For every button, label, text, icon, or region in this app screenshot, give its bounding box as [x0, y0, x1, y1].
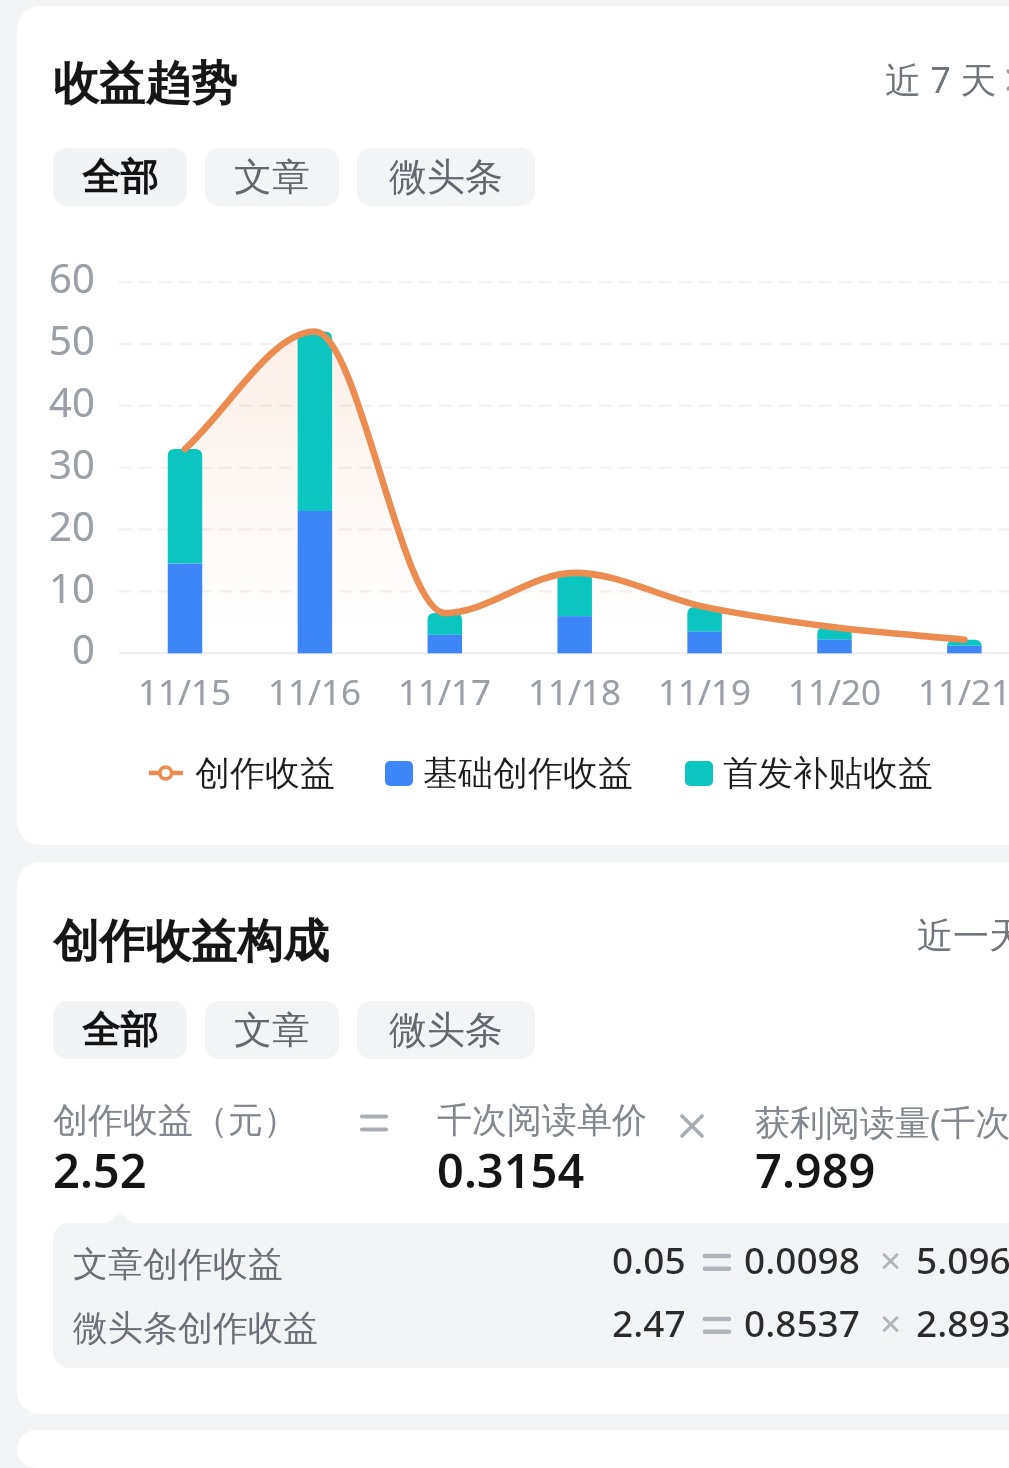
button[interactable]: 文章	[205, 1001, 339, 1059]
staticText: 文章	[234, 1006, 310, 1054]
button[interactable]: 创作收益	[149, 751, 335, 795]
staticText: 0.8537	[744, 1297, 860, 1347]
button[interactable]: 近一天	[917, 913, 1009, 958]
staticText: 基础创作收益	[423, 751, 633, 795]
button[interactable]: 首发补贴收益	[685, 751, 933, 795]
staticText: 微头条	[389, 1006, 503, 1054]
button[interactable]: 近 7 天	[885, 55, 1009, 104]
staticText: 创作收益（元）	[53, 1098, 298, 1142]
staticText: 2.893	[916, 1297, 1009, 1347]
button[interactable]: 微头条	[357, 148, 535, 206]
staticText: ×	[880, 1297, 902, 1347]
staticText: 7.989	[755, 1138, 876, 1202]
staticText: 2.47	[612, 1297, 686, 1347]
staticText: 60	[49, 250, 95, 304]
staticText: 近一天	[917, 913, 1009, 958]
staticText: 千次阅读单价	[437, 1098, 647, 1142]
staticText: 近 7 天	[885, 55, 997, 104]
staticText: 微头条	[389, 153, 503, 201]
staticText: 微头条创作收益	[73, 1306, 318, 1350]
button[interactable]: 微头条创作收益	[53, 1293, 1009, 1357]
staticText: 5.096	[916, 1234, 1009, 1284]
button[interactable]: 基础创作收益	[385, 751, 633, 795]
staticText: 创作收益构成	[53, 913, 329, 971]
staticText: ×	[880, 1234, 902, 1284]
staticText: 0.0098	[744, 1234, 860, 1284]
button[interactable]: 文章创作收益	[53, 1229, 1009, 1293]
staticText: 收益趋势	[53, 55, 237, 113]
staticText: 创作收益	[195, 751, 335, 795]
staticText: 20	[49, 498, 95, 552]
button[interactable]: 全部	[53, 1001, 187, 1059]
staticText: 40	[49, 374, 95, 428]
staticText: 11/16	[268, 668, 362, 716]
staticText: 获利阅读量(千次	[755, 1098, 1009, 1146]
button[interactable]: 全部	[53, 148, 187, 206]
other: 收益趋势图表	[53, 282, 1009, 682]
staticText: 全部	[82, 153, 158, 201]
staticText: 0	[72, 621, 95, 675]
staticText: 2.52	[53, 1138, 147, 1202]
staticText: 文章	[234, 153, 310, 201]
staticText: 11/15	[138, 668, 232, 716]
staticText: 11/17	[398, 668, 492, 716]
staticText: 11/20	[788, 668, 882, 716]
button[interactable]: 微头条	[357, 1001, 535, 1059]
staticText: 0.05	[612, 1234, 686, 1284]
staticText: 30	[49, 436, 95, 490]
staticText: 11/21	[918, 668, 1009, 716]
staticText: 11/18	[528, 668, 622, 716]
staticText: 文章创作收益	[73, 1242, 283, 1286]
button[interactable]: 文章	[205, 148, 339, 206]
staticText: 首发补贴收益	[723, 751, 933, 795]
staticText: 11/19	[658, 668, 752, 716]
staticText: 0.3154	[437, 1138, 585, 1202]
staticText: 全部	[82, 1006, 158, 1054]
staticText: 50	[49, 312, 95, 366]
staticText: 10	[49, 560, 95, 614]
